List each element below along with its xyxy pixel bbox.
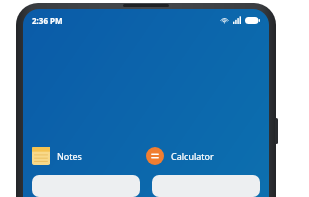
button[interactable]: Notes — [32, 143, 146, 169]
button[interactable]: Calculator — [146, 143, 260, 169]
staticText: Calculator — [171, 150, 214, 162]
button[interactable]: App card — [32, 175, 140, 197]
staticText: Notes — [57, 150, 82, 162]
button[interactable]: App card — [152, 175, 260, 197]
staticText: 2:36 PM — [32, 15, 63, 26]
